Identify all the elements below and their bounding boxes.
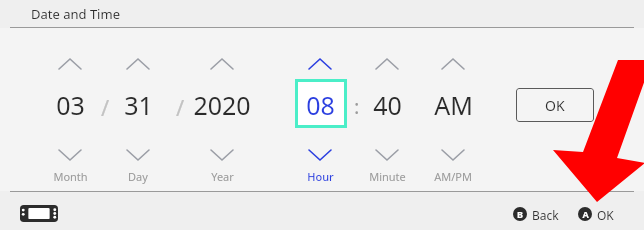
button[interactable]: Increase Minute <box>365 54 409 74</box>
button[interactable]: 08 <box>288 88 352 122</box>
button[interactable]: 03 <box>38 88 102 122</box>
button[interactable]: Decrease Year <box>200 145 244 165</box>
staticText: / <box>176 92 185 122</box>
staticText: Back <box>532 207 559 221</box>
button[interactable]: OK <box>597 207 627 221</box>
staticText: Year <box>211 169 234 184</box>
button[interactable]: Increase Hour <box>298 54 342 74</box>
staticText: Date and Time <box>31 5 120 23</box>
staticText: 40 <box>373 88 402 122</box>
button[interactable]: OK <box>516 88 594 122</box>
button[interactable]: Decrease Minute <box>365 145 409 165</box>
button[interactable]: Decrease Day <box>116 145 160 165</box>
staticText: / <box>101 92 110 122</box>
button[interactable]: Decrease Month <box>48 145 92 165</box>
staticText: 03 <box>56 88 85 122</box>
staticText: AM/PM <box>434 169 472 184</box>
button[interactable]: Back <box>532 207 572 221</box>
staticText: : <box>354 93 360 120</box>
staticText: Day <box>128 169 148 184</box>
button[interactable]: Increase Month <box>48 54 92 74</box>
button[interactable]: Increase Year <box>200 54 244 74</box>
button[interactable]: Decrease Hour <box>298 145 342 165</box>
button[interactable]: Increase AM/PM <box>431 54 475 74</box>
staticText: 31 <box>124 88 153 122</box>
staticText: OK <box>545 96 565 115</box>
button[interactable]: AM <box>421 88 485 122</box>
staticText: B <box>517 208 523 220</box>
button[interactable]: Console <box>20 205 58 222</box>
button[interactable]: 40 <box>355 88 419 122</box>
button[interactable]: Decrease AM/PM <box>431 145 475 165</box>
staticText: 2020 <box>193 88 251 122</box>
staticText: 08 <box>306 88 335 122</box>
staticText: Hour <box>307 169 334 184</box>
button[interactable]: 31 <box>106 88 170 122</box>
staticText: AM <box>434 88 473 122</box>
button[interactable]: Increase Day <box>116 54 160 74</box>
staticText: OK <box>597 207 614 221</box>
staticText: Month <box>53 169 88 184</box>
staticText: Minute <box>369 169 406 184</box>
staticText: A <box>582 208 589 220</box>
button[interactable]: 2020 <box>190 88 254 122</box>
